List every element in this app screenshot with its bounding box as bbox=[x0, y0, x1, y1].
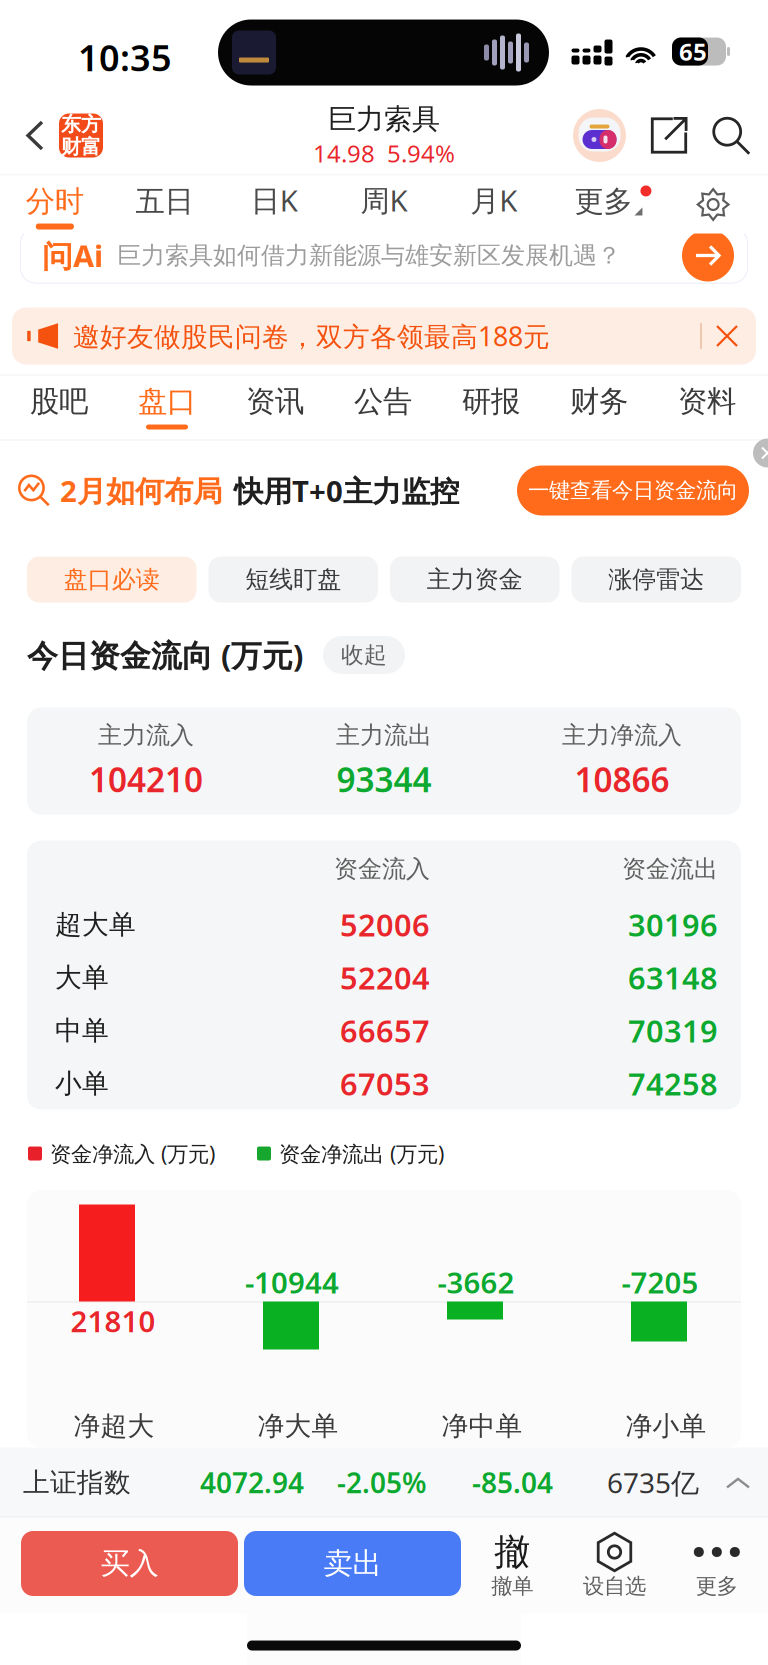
staticText: 卖出 bbox=[323, 1545, 381, 1581]
staticText: 巨力索具如何借力新能源与雄安新区发展机遇？ bbox=[117, 241, 621, 270]
staticText: 更多 bbox=[696, 1573, 738, 1599]
staticText: 主力流入 bbox=[98, 721, 194, 750]
staticText: 短线盯盘 bbox=[245, 565, 341, 594]
staticText: 问Ai bbox=[42, 235, 103, 276]
button[interactable]: 设置 bbox=[658, 175, 768, 233]
staticText: 净超大 bbox=[73, 1410, 154, 1442]
button[interactable]: 资讯 bbox=[221, 375, 329, 440]
button[interactable]: 短线盯盘 bbox=[208, 556, 378, 602]
staticText: 更多 bbox=[574, 183, 632, 219]
staticText: 研报 bbox=[462, 383, 520, 419]
staticText: 资讯 bbox=[246, 383, 304, 419]
button[interactable]: 一键查看今日资金流向 bbox=[517, 465, 749, 515]
button[interactable]: 五日 bbox=[110, 175, 219, 233]
staticText: -3662 bbox=[437, 1262, 514, 1301]
staticText: 撤 bbox=[494, 1530, 530, 1574]
button[interactable]: 周K bbox=[329, 175, 439, 233]
staticText: 盘口 bbox=[138, 383, 196, 419]
staticText: 财富 bbox=[61, 134, 101, 159]
staticText: 上证指数 bbox=[23, 1466, 131, 1499]
staticText: 大单 bbox=[55, 961, 109, 994]
staticText: 五日 bbox=[136, 183, 194, 219]
button[interactable]: 设自选 bbox=[563, 1531, 666, 1606]
staticText: 65 bbox=[679, 36, 707, 67]
button[interactable]: 财务 bbox=[545, 375, 653, 440]
button[interactable]: 公告 bbox=[329, 375, 437, 440]
button[interactable]: 买入 bbox=[21, 1531, 238, 1596]
button[interactable]: 月K bbox=[439, 175, 549, 233]
staticText: 日K bbox=[251, 180, 298, 219]
staticText: 10866 bbox=[574, 757, 669, 801]
staticText: 6735亿 bbox=[607, 1464, 699, 1501]
staticText: 74258 bbox=[628, 1063, 718, 1104]
staticText: 小单 bbox=[55, 1067, 109, 1100]
button[interactable]: 分时 bbox=[0, 175, 110, 233]
button[interactable]: 返回 bbox=[0, 112, 103, 159]
staticText: 主力净流入 bbox=[562, 721, 682, 750]
staticText: 盘口必读 bbox=[64, 565, 160, 594]
staticText: 63148 bbox=[628, 957, 718, 998]
button[interactable]: 股吧 bbox=[5, 375, 113, 440]
button[interactable]: 关闭广告 bbox=[739, 440, 768, 469]
staticText: 资金净流出 (万元) bbox=[279, 1139, 444, 1168]
staticText: 邀好友做股民问卷，双方各领最高188元 bbox=[73, 318, 550, 354]
button[interactable]: 更多 bbox=[549, 175, 658, 233]
staticText: 30196 bbox=[628, 904, 718, 945]
staticText: 66657 bbox=[340, 1010, 430, 1051]
staticText: 5.94% bbox=[387, 137, 455, 169]
staticText: 2月如何布局 bbox=[60, 471, 222, 510]
staticText: 52006 bbox=[340, 904, 430, 945]
staticText: 67053 bbox=[340, 1063, 430, 1104]
staticText: 14.98 bbox=[313, 137, 375, 169]
staticText: 净小单 bbox=[625, 1410, 706, 1442]
staticText: 93344 bbox=[336, 757, 431, 801]
button[interactable]: 涨停雷达 bbox=[571, 556, 741, 602]
staticText: 70319 bbox=[628, 1010, 718, 1051]
button[interactable]: 日K bbox=[219, 175, 329, 233]
staticText: 104210 bbox=[89, 757, 203, 801]
button[interactable]: 搜索 bbox=[712, 116, 750, 154]
staticText: 月K bbox=[470, 180, 517, 219]
button[interactable]: 更多 bbox=[666, 1531, 768, 1606]
button[interactable]: 撤 bbox=[461, 1531, 563, 1606]
staticText: 收起 bbox=[341, 641, 387, 669]
staticText: 净大单 bbox=[257, 1410, 338, 1442]
staticText: 财务 bbox=[570, 383, 628, 419]
button[interactable]: 收起 bbox=[323, 636, 405, 674]
button[interactable]: 资料 bbox=[653, 375, 761, 440]
staticText: 股吧 bbox=[30, 383, 88, 419]
staticText: 撤单 bbox=[491, 1573, 533, 1599]
staticText: 巨力索具 bbox=[328, 102, 440, 136]
button[interactable]: 分享 bbox=[650, 116, 688, 154]
staticText: 资料 bbox=[678, 383, 736, 419]
button[interactable]: AI 助手 bbox=[573, 109, 626, 162]
button[interactable]: 主力资金 bbox=[390, 556, 559, 602]
button[interactable]: 关闭 bbox=[702, 325, 738, 347]
staticText: 超大单 bbox=[55, 908, 136, 941]
staticText: 52204 bbox=[340, 957, 430, 998]
staticText: 涨停雷达 bbox=[608, 565, 704, 594]
staticText: 东方 bbox=[61, 112, 101, 136]
staticText: -7205 bbox=[621, 1262, 698, 1301]
staticText: -2.05% bbox=[337, 1464, 427, 1501]
staticText: 净中单 bbox=[441, 1410, 522, 1442]
staticText: 今日资金流向 (万元) bbox=[27, 635, 303, 675]
staticText: 21810 bbox=[70, 1301, 155, 1340]
staticText: 分时 bbox=[26, 183, 84, 219]
staticText: 快用T+0主力监控 bbox=[234, 471, 459, 510]
staticText: -10944 bbox=[245, 1262, 339, 1301]
staticText: 资金净流入 (万元) bbox=[50, 1139, 215, 1168]
staticText: 主力资金 bbox=[427, 565, 523, 594]
button[interactable]: 盘口 bbox=[113, 375, 221, 440]
button[interactable]: 问Ai bbox=[0, 227, 768, 283]
staticText: 4072.94 bbox=[200, 1464, 304, 1501]
staticText: 设自选 bbox=[583, 1573, 646, 1599]
button[interactable]: 展开 bbox=[726, 1476, 750, 1489]
staticText: 周K bbox=[360, 180, 407, 219]
staticText: 公告 bbox=[354, 383, 412, 419]
button[interactable]: 盘口必读 bbox=[27, 556, 196, 602]
staticText: -85.04 bbox=[472, 1464, 553, 1501]
button[interactable]: 研报 bbox=[437, 375, 545, 440]
button[interactable]: 卖出 bbox=[244, 1531, 461, 1596]
staticText: 主力流出 bbox=[336, 721, 432, 750]
